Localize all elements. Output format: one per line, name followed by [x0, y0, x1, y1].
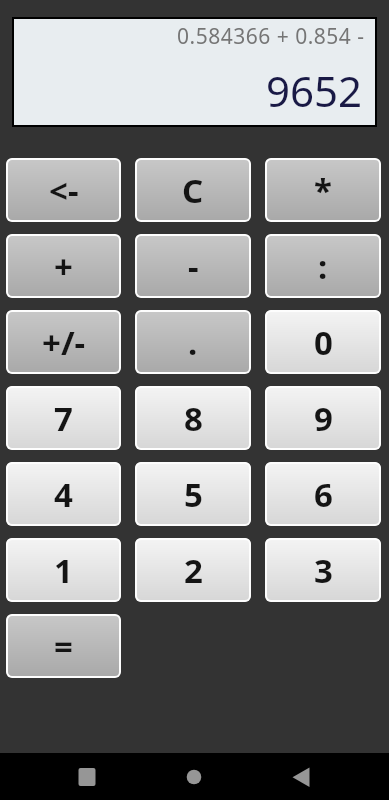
staticText: 4 [54, 472, 73, 517]
staticText: 7 [54, 396, 73, 441]
staticText: 0.584366 + 0.854 - [177, 22, 365, 51]
button[interactable]: * [265, 158, 381, 222]
staticText: 5 [184, 472, 203, 517]
button[interactable]: C [135, 158, 251, 222]
staticText: = [54, 624, 73, 669]
button[interactable]: 0 [265, 310, 381, 374]
button[interactable]: 6 [265, 462, 381, 526]
staticText: <- [49, 168, 79, 213]
button[interactable]: 1 [6, 538, 121, 602]
staticText: +/- [42, 320, 86, 365]
staticText: C [182, 168, 204, 213]
button[interactable] [277, 753, 325, 800]
staticText: 6 [314, 472, 333, 517]
button[interactable]: +/- [6, 310, 121, 374]
staticText: 1 [54, 548, 73, 593]
button[interactable]: 7 [6, 386, 121, 450]
staticText: + [54, 244, 73, 289]
button[interactable]: 9 [265, 386, 381, 450]
button[interactable]: 5 [135, 462, 251, 526]
button[interactable]: = [6, 614, 121, 678]
staticText: 2 [184, 548, 203, 593]
button[interactable]: : [265, 234, 381, 298]
button[interactable]: + [6, 234, 121, 298]
staticText: : [318, 244, 328, 289]
staticText: 9 [314, 396, 333, 441]
button[interactable]: - [135, 234, 251, 298]
button[interactable]: 3 [265, 538, 381, 602]
staticText: 3 [314, 548, 333, 593]
staticText: 8 [184, 396, 203, 441]
staticText: * [314, 168, 332, 213]
staticText: - [188, 244, 199, 289]
button[interactable]: . [135, 310, 251, 374]
button[interactable]: <- [6, 158, 121, 222]
staticText: 0 [314, 320, 333, 365]
button[interactable]: 2 [135, 538, 251, 602]
staticText: . [188, 320, 198, 365]
staticText: 9652 [266, 62, 363, 119]
button[interactable] [63, 753, 111, 800]
button[interactable]: 8 [135, 386, 251, 450]
button[interactable] [170, 753, 218, 800]
button[interactable]: 4 [6, 462, 121, 526]
